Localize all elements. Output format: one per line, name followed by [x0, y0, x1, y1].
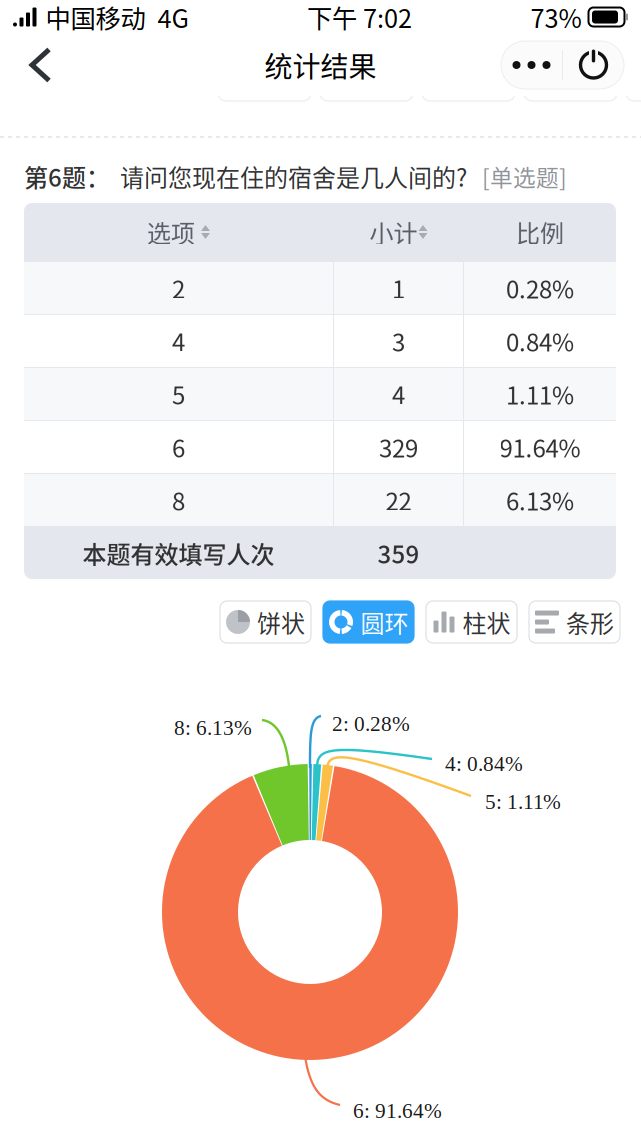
staticText: 329 [379, 430, 418, 464]
staticText: 本题有效填写人次 [82, 536, 274, 570]
staticText: 2 [172, 271, 185, 305]
staticText: 6: 91.64% [353, 1099, 442, 1123]
staticText: 3 [392, 324, 405, 358]
staticText: 5 [172, 377, 185, 411]
staticText: 0.84% [506, 324, 574, 358]
staticText: 6.13% [506, 483, 574, 517]
staticText: 圆环 [360, 605, 408, 639]
button[interactable]: 圆环 [323, 601, 414, 643]
staticText: 1 [392, 271, 405, 305]
staticText: 第6题： [24, 159, 110, 194]
button[interactable]: Back [0, 35, 73, 94]
staticText: 条形 [566, 605, 614, 639]
staticText: 下午 7:02 [307, 0, 412, 35]
staticText: 8 [172, 483, 185, 517]
staticText: 4G [145, 0, 188, 35]
button[interactable]: 条形 [529, 601, 620, 643]
staticText: 5: 1.11% [485, 790, 561, 814]
staticText: 4 [172, 324, 185, 358]
staticText: 6 [172, 430, 185, 464]
button[interactable]: 柱状 [426, 601, 517, 643]
staticText: 请问您现在住的宿舍是几人间的? [110, 159, 467, 194]
staticText: 0.28% [506, 271, 574, 305]
staticText: 小计 [369, 215, 417, 249]
staticText: 中国移动 [45, 0, 145, 35]
staticText: 359 [377, 536, 419, 570]
staticText: 4 [392, 377, 405, 411]
staticText: 柱状 [462, 605, 510, 639]
staticText: 1.11% [506, 377, 574, 411]
staticText: 饼状 [257, 605, 305, 639]
staticText: [单选题] [467, 160, 567, 193]
staticText: 73% [530, 0, 581, 35]
button[interactable]: 饼状 [220, 601, 311, 643]
staticText: 2: 0.28% [332, 712, 410, 736]
staticText: 4: 0.84% [445, 752, 523, 776]
staticText: 统计结果 [264, 45, 376, 85]
staticText: 22 [385, 483, 411, 517]
staticText: 比例 [516, 215, 564, 249]
staticText: 91.64% [499, 430, 580, 464]
staticText: 选项 [147, 215, 195, 249]
button[interactable]: More and close [501, 41, 624, 89]
staticText: 8: 6.13% [174, 716, 252, 740]
